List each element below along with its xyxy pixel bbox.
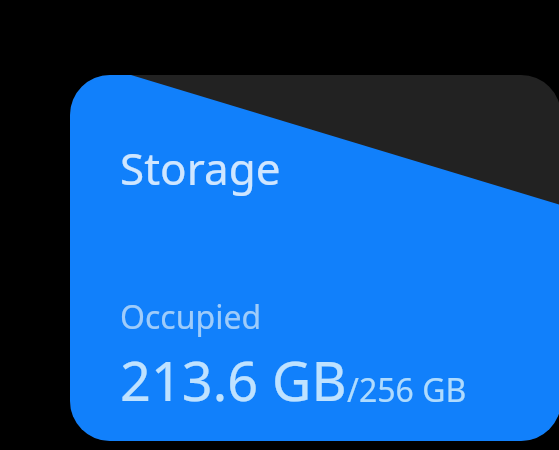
staticText: /256 GB <box>347 368 467 412</box>
staticText: 213.6 GB <box>120 343 347 417</box>
button[interactable]: Storage: 213.6 GB of 256 GB occupied <box>70 75 559 441</box>
staticText: Occupied <box>120 295 262 339</box>
staticText: Storage <box>120 138 281 198</box>
